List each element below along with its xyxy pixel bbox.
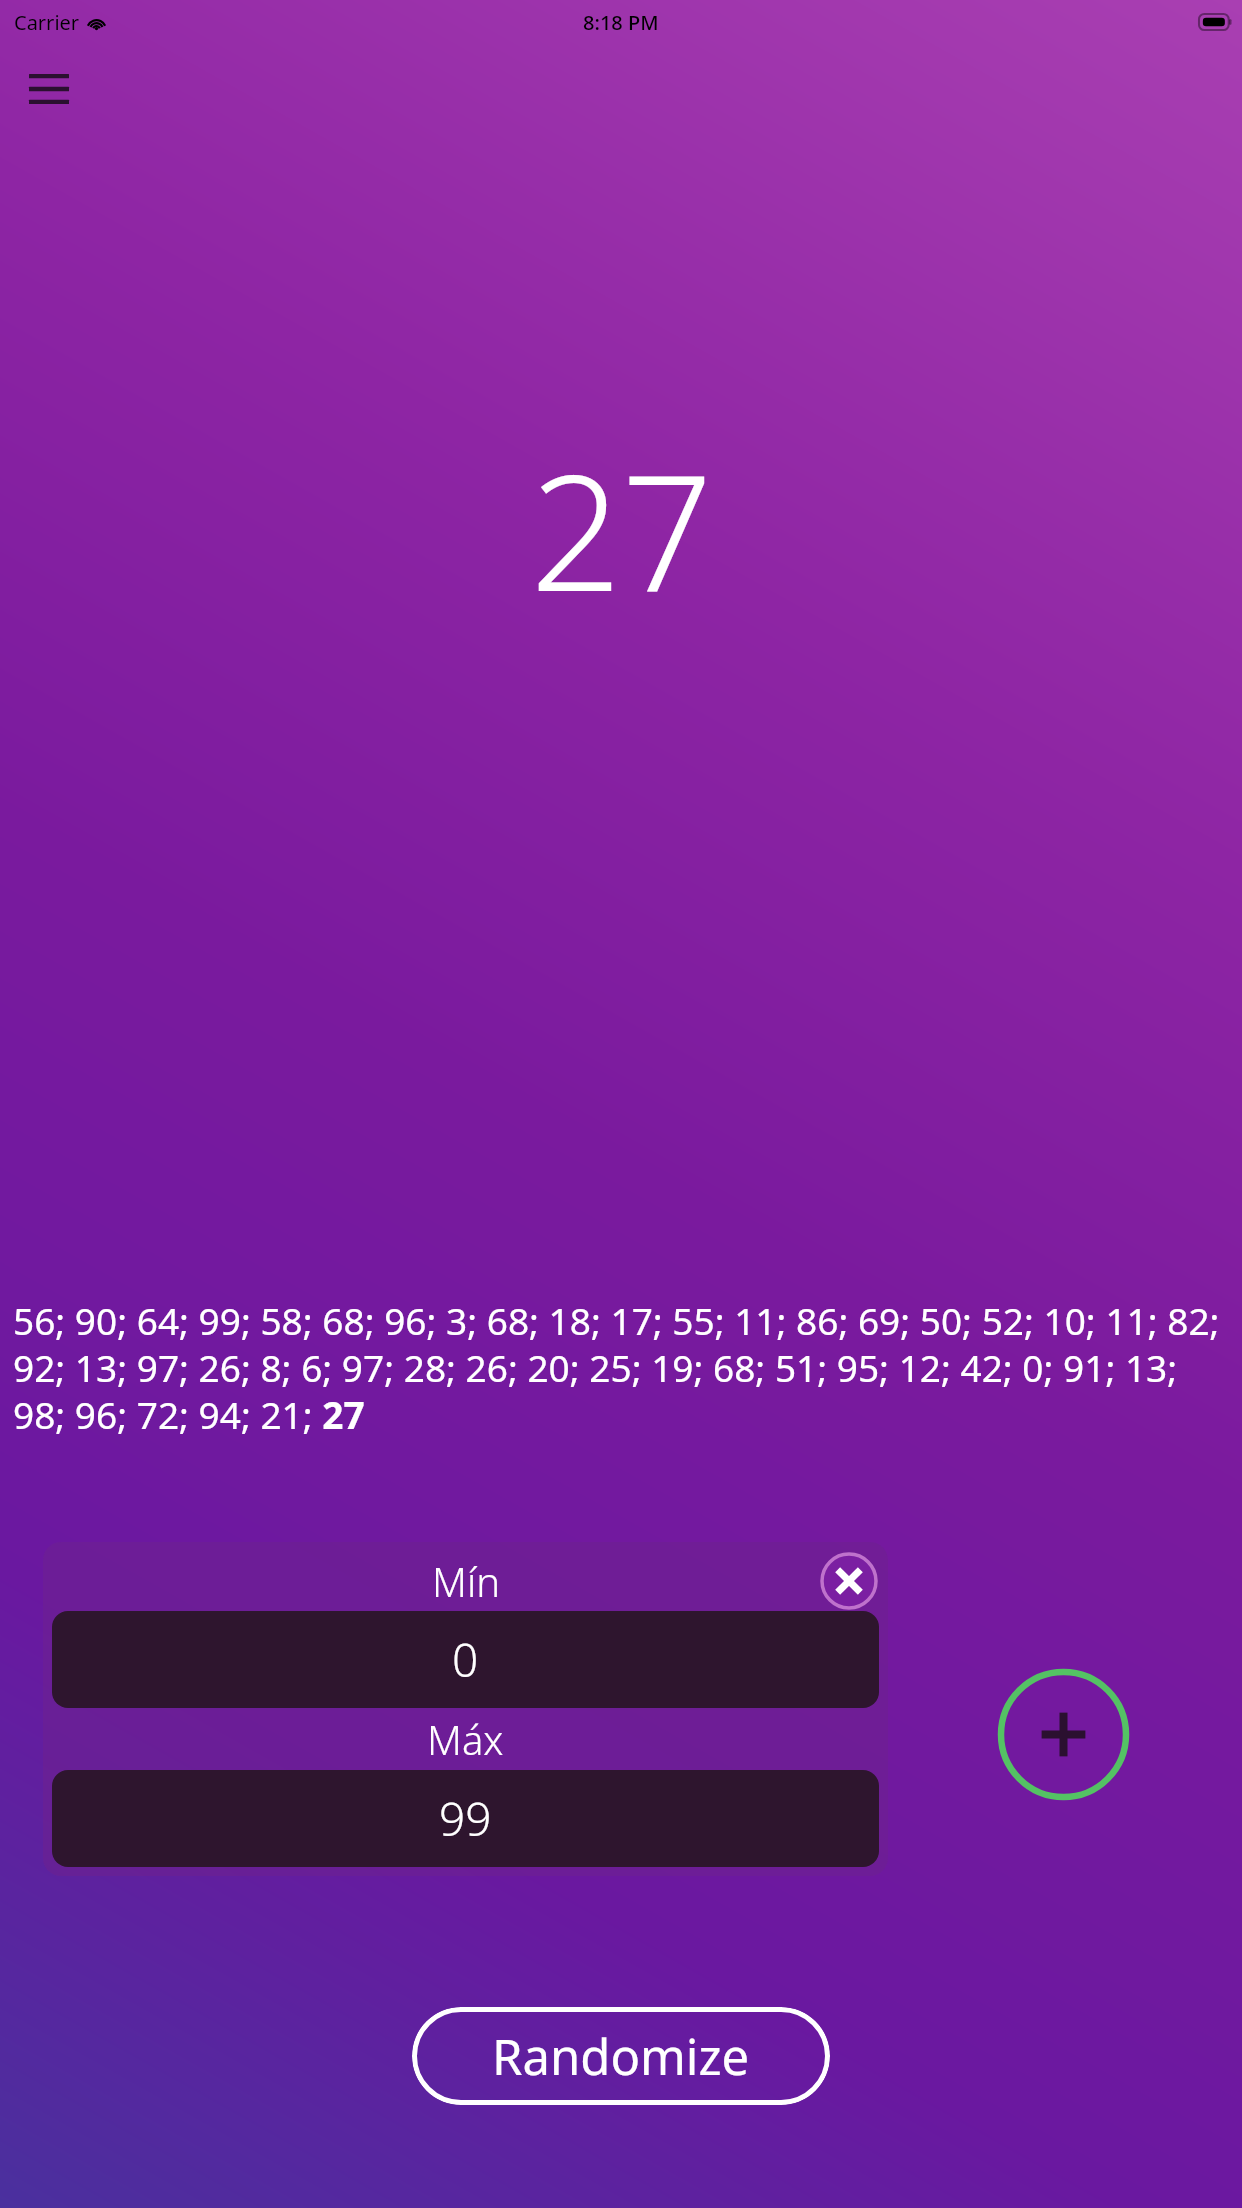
staticText: Mín: [432, 1554, 500, 1608]
button[interactable]: Randomize: [412, 2007, 830, 2105]
button[interactable]: Menu: [20, 63, 78, 115]
staticText: 99: [439, 1787, 492, 1850]
staticText: Carrier: [14, 9, 80, 36]
button[interactable]: Close: [820, 1552, 878, 1610]
staticText: Randomize: [492, 2023, 750, 2090]
button[interactable]: 99: [52, 1770, 879, 1867]
button[interactable]: Add: [997, 1668, 1130, 1801]
staticText: 8:18 PM: [583, 9, 659, 36]
staticText: Máx: [427, 1712, 504, 1766]
staticText: 56; 90; 64; 99; 58; 68; 96; 3; 68; 18; 1…: [13, 1295, 1229, 1440]
button[interactable]: 0: [52, 1611, 879, 1708]
staticText: 0: [452, 1628, 479, 1691]
staticText: 27: [530, 420, 713, 638]
